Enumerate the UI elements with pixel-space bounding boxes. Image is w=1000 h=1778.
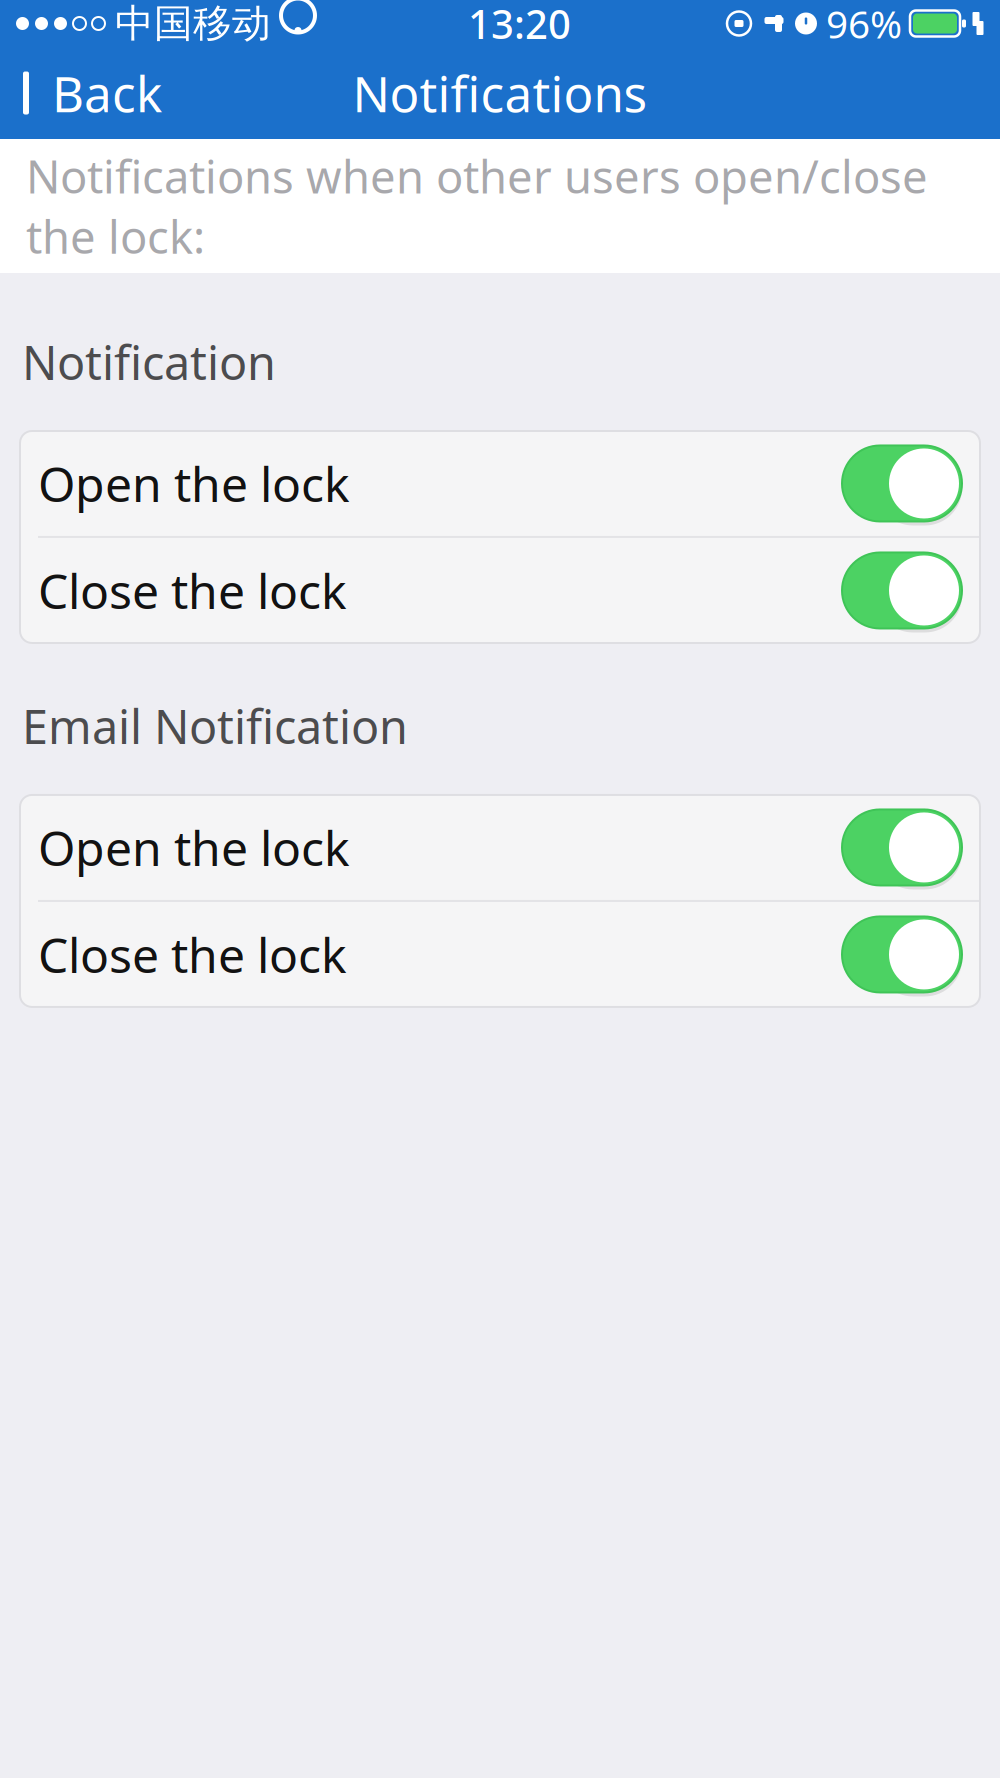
staticText: 96%: [826, 0, 902, 49]
button[interactable]: Close the lock: [20, 538, 980, 643]
button[interactable]: Back: [0, 48, 180, 138]
staticText: Notifications: [352, 60, 647, 126]
staticText: Email Notification: [22, 695, 408, 757]
staticText: Notifications when other users open/clos…: [26, 146, 928, 266]
button[interactable]: Open the lock: [20, 431, 980, 536]
button[interactable]: Open the lock: [20, 795, 980, 900]
staticText: Notification: [22, 331, 276, 393]
staticText: Open the lock: [38, 452, 350, 515]
staticText: 中国移动: [115, 0, 271, 47]
staticText: Back: [52, 60, 162, 126]
staticText: Open the lock: [38, 816, 350, 879]
staticText: 13:20: [468, 0, 571, 50]
staticText: Close the lock: [38, 559, 347, 622]
button[interactable]: Close the lock: [20, 902, 980, 1007]
staticText: Close the lock: [38, 923, 347, 986]
